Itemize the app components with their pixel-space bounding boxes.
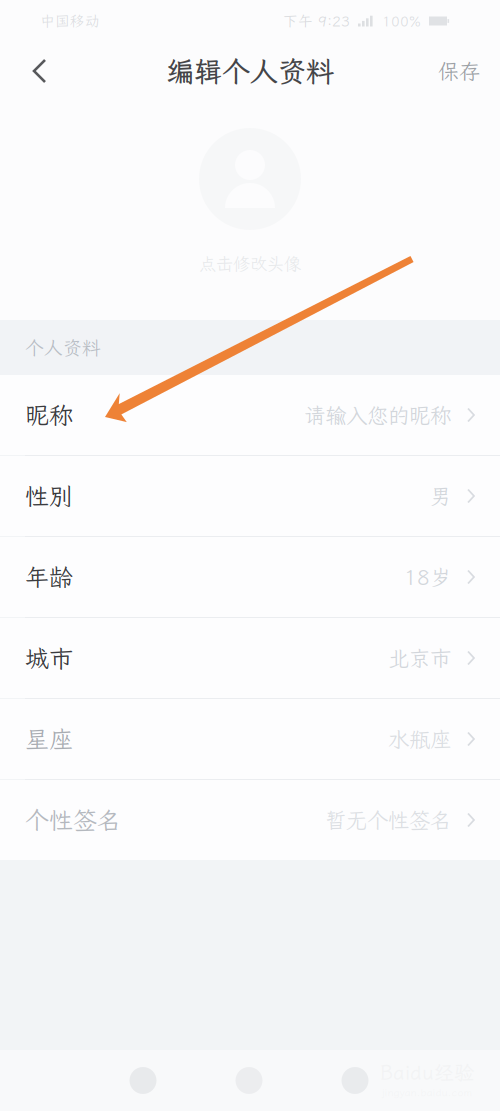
button[interactable]: 个性签名 bbox=[0, 780, 500, 860]
button[interactable]: 性别 bbox=[0, 456, 500, 536]
staticText: 个人资料 bbox=[25, 335, 101, 360]
staticText: 18岁 bbox=[404, 563, 451, 591]
staticText: 水瓶座 bbox=[388, 725, 451, 753]
button[interactable]: 年龄 bbox=[0, 537, 500, 617]
staticText: 昵称 bbox=[25, 399, 73, 431]
staticText: 保存 bbox=[438, 57, 480, 85]
button[interactable]: Back bbox=[0, 42, 67, 100]
button[interactable]: 昵称 bbox=[0, 375, 500, 455]
button[interactable]: Profile bbox=[302, 1050, 408, 1111]
staticText: 请输入您的昵称 bbox=[304, 401, 451, 429]
staticText: 星座 bbox=[25, 723, 73, 755]
button[interactable]: 星座 bbox=[0, 699, 500, 779]
staticText: 点击修改头像 bbox=[199, 252, 301, 275]
staticText: 暂无个性签名 bbox=[325, 806, 451, 834]
staticText: 性别 bbox=[25, 480, 73, 512]
button[interactable]: 保存 bbox=[406, 42, 500, 100]
staticText: 中国移动 bbox=[40, 11, 100, 31]
staticText: 编辑个人资料 bbox=[166, 53, 334, 89]
button[interactable]: Messages bbox=[196, 1050, 302, 1111]
staticText: 年龄 bbox=[25, 561, 73, 593]
staticText: 100% bbox=[382, 11, 421, 31]
staticText: 城市 bbox=[25, 642, 73, 674]
button[interactable]: 城市 bbox=[0, 618, 500, 698]
staticText: 下午 9:23 bbox=[283, 11, 350, 31]
staticText: 男 bbox=[430, 482, 451, 510]
staticText: 北京市 bbox=[388, 644, 451, 672]
button[interactable]: Home bbox=[90, 1050, 196, 1111]
staticText: 个性签名 bbox=[25, 804, 121, 836]
